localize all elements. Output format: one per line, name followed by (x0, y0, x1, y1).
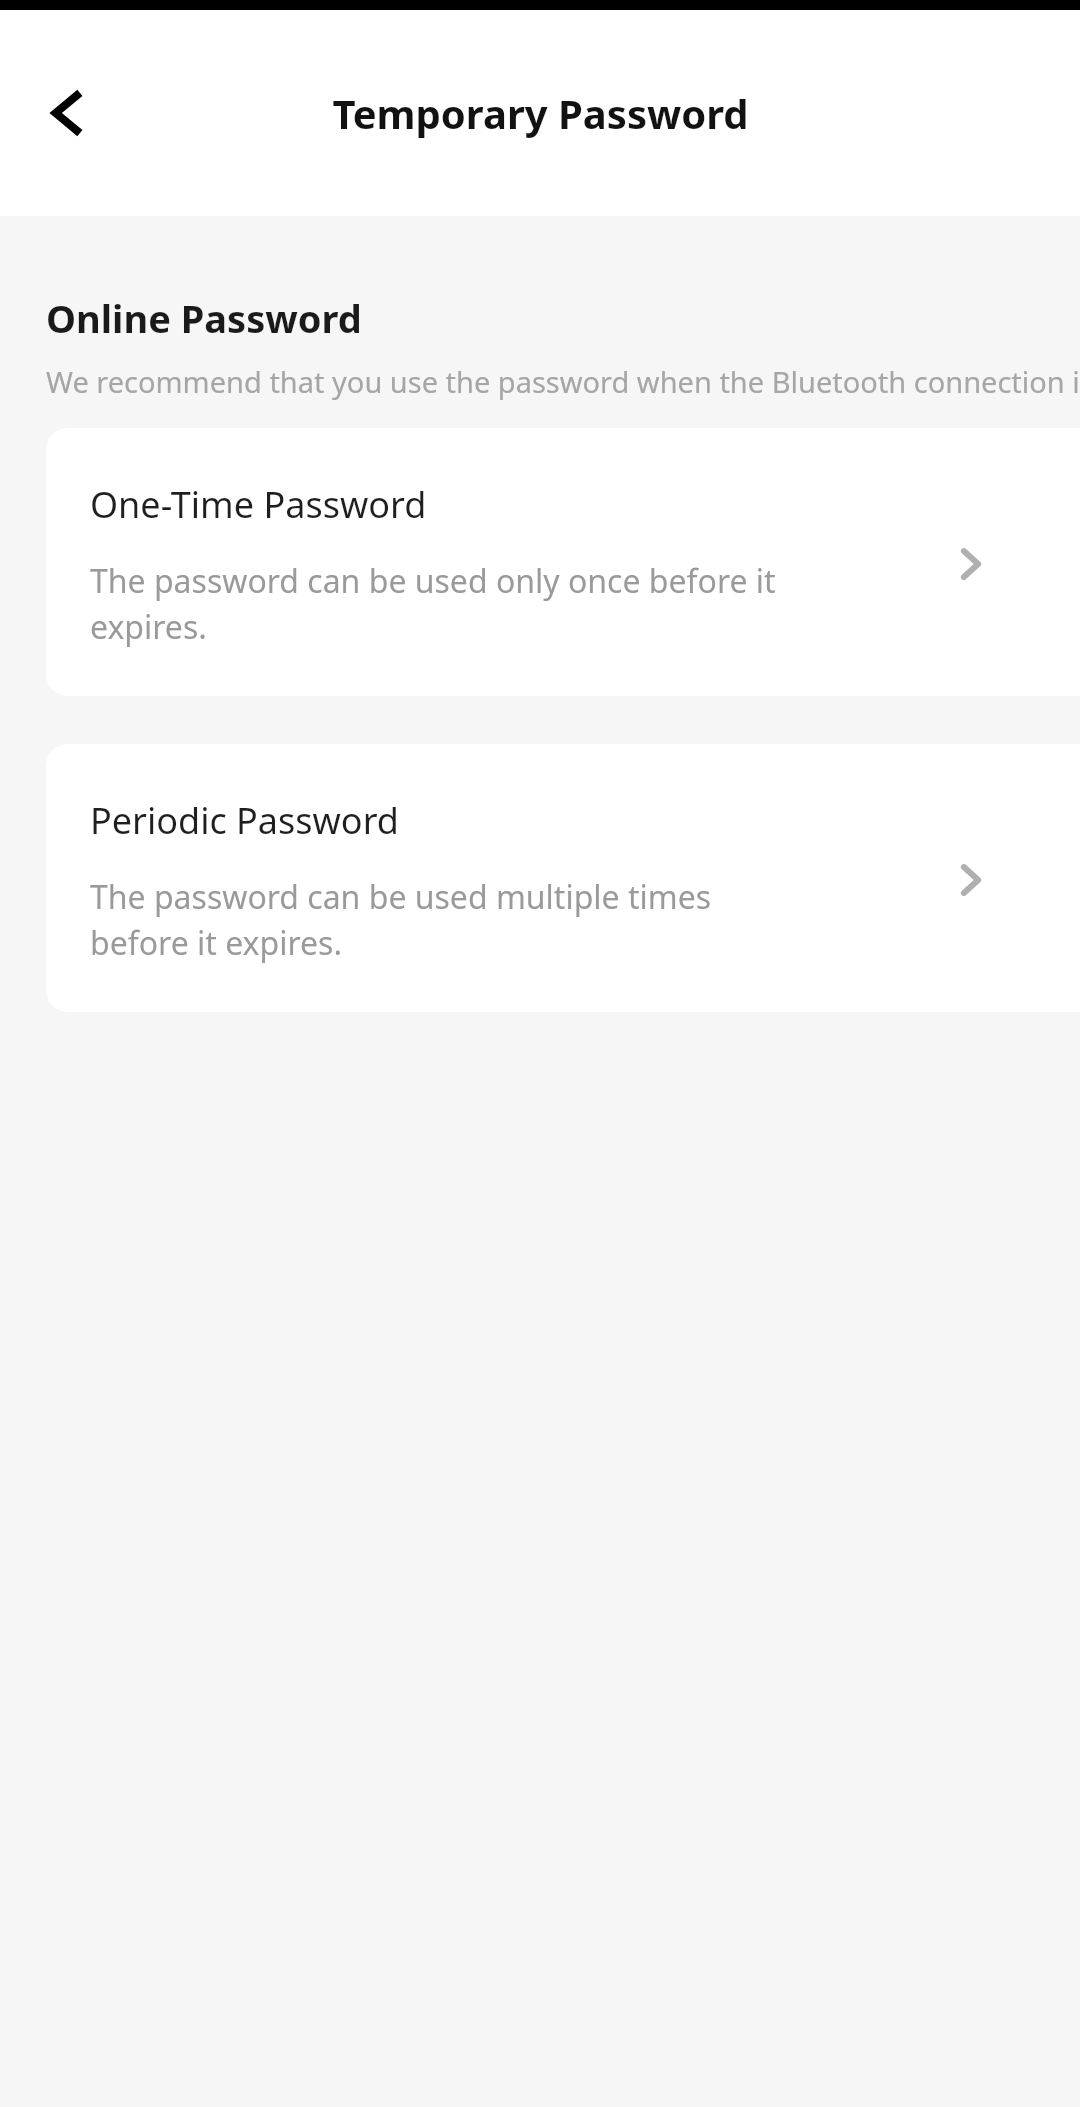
staticText: Temporary Password (332, 86, 749, 140)
button[interactable]: Periodic Password (46, 744, 1080, 1012)
button[interactable]: Back (20, 65, 116, 161)
staticText: We recommend that you use the password w… (46, 362, 1080, 401)
staticText: One-Time Password (90, 480, 427, 529)
staticText: Online Password (46, 292, 362, 344)
staticText: The password can be used only once befor… (90, 559, 776, 648)
button[interactable]: One-Time Password (46, 428, 1080, 696)
staticText: The password can be used multiple times … (90, 875, 712, 964)
staticText: Periodic Password (90, 796, 399, 845)
